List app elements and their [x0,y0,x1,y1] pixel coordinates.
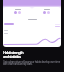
button[interactable]: Stat card [33,7,60,16]
button[interactable]: Stat card [4,7,31,16]
staticText: Get a clear picture of how your habits d… [3,60,61,66]
staticText: Habit strength and statistics [3,50,24,59]
